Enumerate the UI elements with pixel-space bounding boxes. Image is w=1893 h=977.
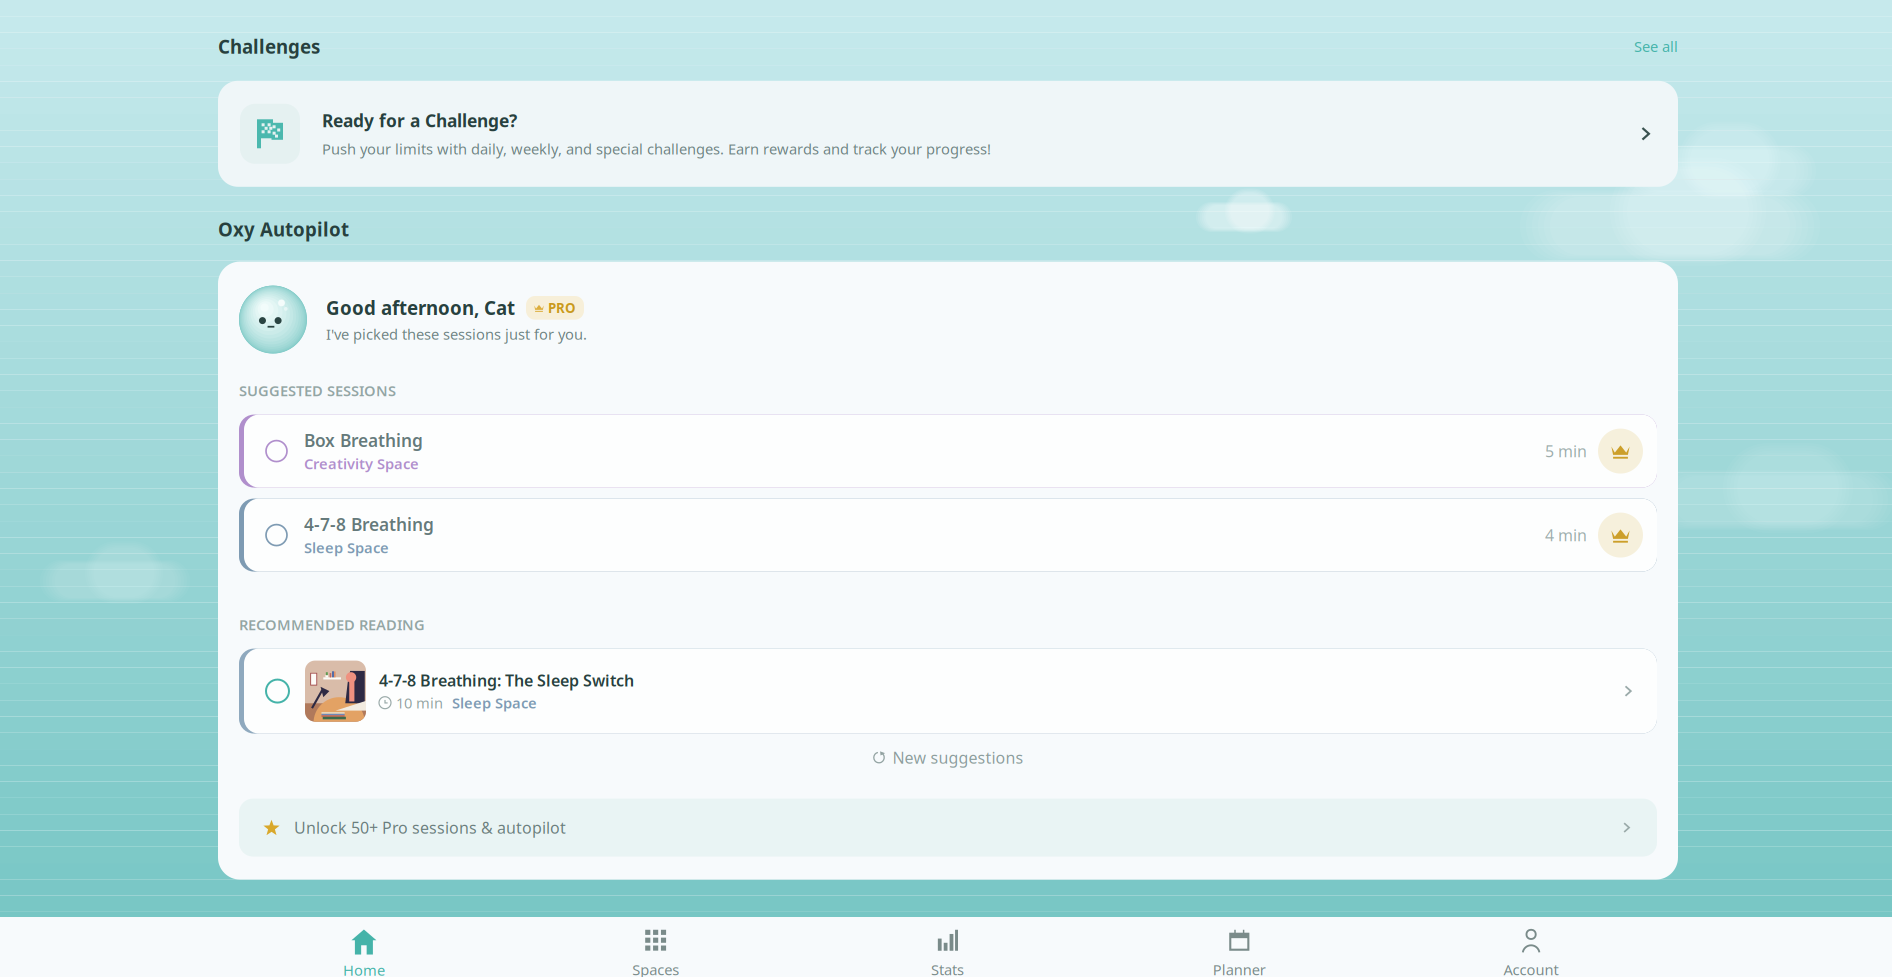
- button[interactable]: Box Breathing: [239, 415, 1657, 488]
- staticText: RECOMMENDED READING: [239, 615, 425, 634]
- staticText: 5 min: [1545, 440, 1587, 462]
- staticText: Good afternoon, Cat: [326, 295, 515, 320]
- staticText: Stats: [931, 960, 964, 977]
- staticText: 4 min: [1545, 524, 1587, 546]
- staticText: SUGGESTED SESSIONS: [239, 381, 396, 400]
- staticText: Sleep Space: [452, 693, 537, 712]
- button[interactable]: Home: [218, 917, 510, 977]
- button[interactable]: New suggestions: [872, 748, 1023, 768]
- staticText: 10 min: [396, 693, 443, 712]
- staticText: Spaces: [632, 960, 679, 977]
- staticText: Push your limits with daily, weekly, and…: [322, 139, 991, 159]
- staticText: 4-7-8 Breathing: [304, 513, 434, 536]
- staticText: Account: [1504, 960, 1559, 977]
- button[interactable]: 4-7-8 Breathing: The Sleep Switch: [239, 649, 1657, 734]
- button[interactable]: Stats: [802, 917, 1093, 977]
- staticText: Challenges: [218, 34, 320, 59]
- staticText: Ready for a Challenge?: [322, 109, 517, 132]
- staticText: PRO: [548, 299, 576, 317]
- staticText: Unlock 50+ Pro sessions & autopilot: [294, 817, 566, 838]
- button[interactable]: Spaces: [510, 917, 802, 977]
- staticText: New suggestions: [892, 747, 1023, 768]
- staticText: Sleep Space: [304, 538, 389, 557]
- staticText: Creativity Space: [304, 454, 419, 473]
- staticText: I've picked these sessions just for you.: [326, 324, 587, 344]
- button[interactable]: Planner: [1093, 917, 1385, 977]
- staticText: Planner: [1213, 960, 1266, 977]
- staticText: Oxy Autopilot: [218, 217, 349, 242]
- button[interactable]: Ready for a Challenge?: [218, 81, 1678, 187]
- button[interactable]: 4-7-8 Breathing: [239, 499, 1657, 572]
- button[interactable]: Unlock 50+ Pro sessions & autopilot: [239, 799, 1657, 857]
- staticText: 4-7-8 Breathing: The Sleep Switch: [379, 670, 634, 691]
- staticText: Box Breathing: [304, 429, 423, 452]
- button[interactable]: Account: [1385, 917, 1677, 977]
- staticText: Home: [343, 960, 385, 977]
- button[interactable]: See all: [1634, 37, 1678, 56]
- staticText: See all: [1634, 37, 1678, 56]
